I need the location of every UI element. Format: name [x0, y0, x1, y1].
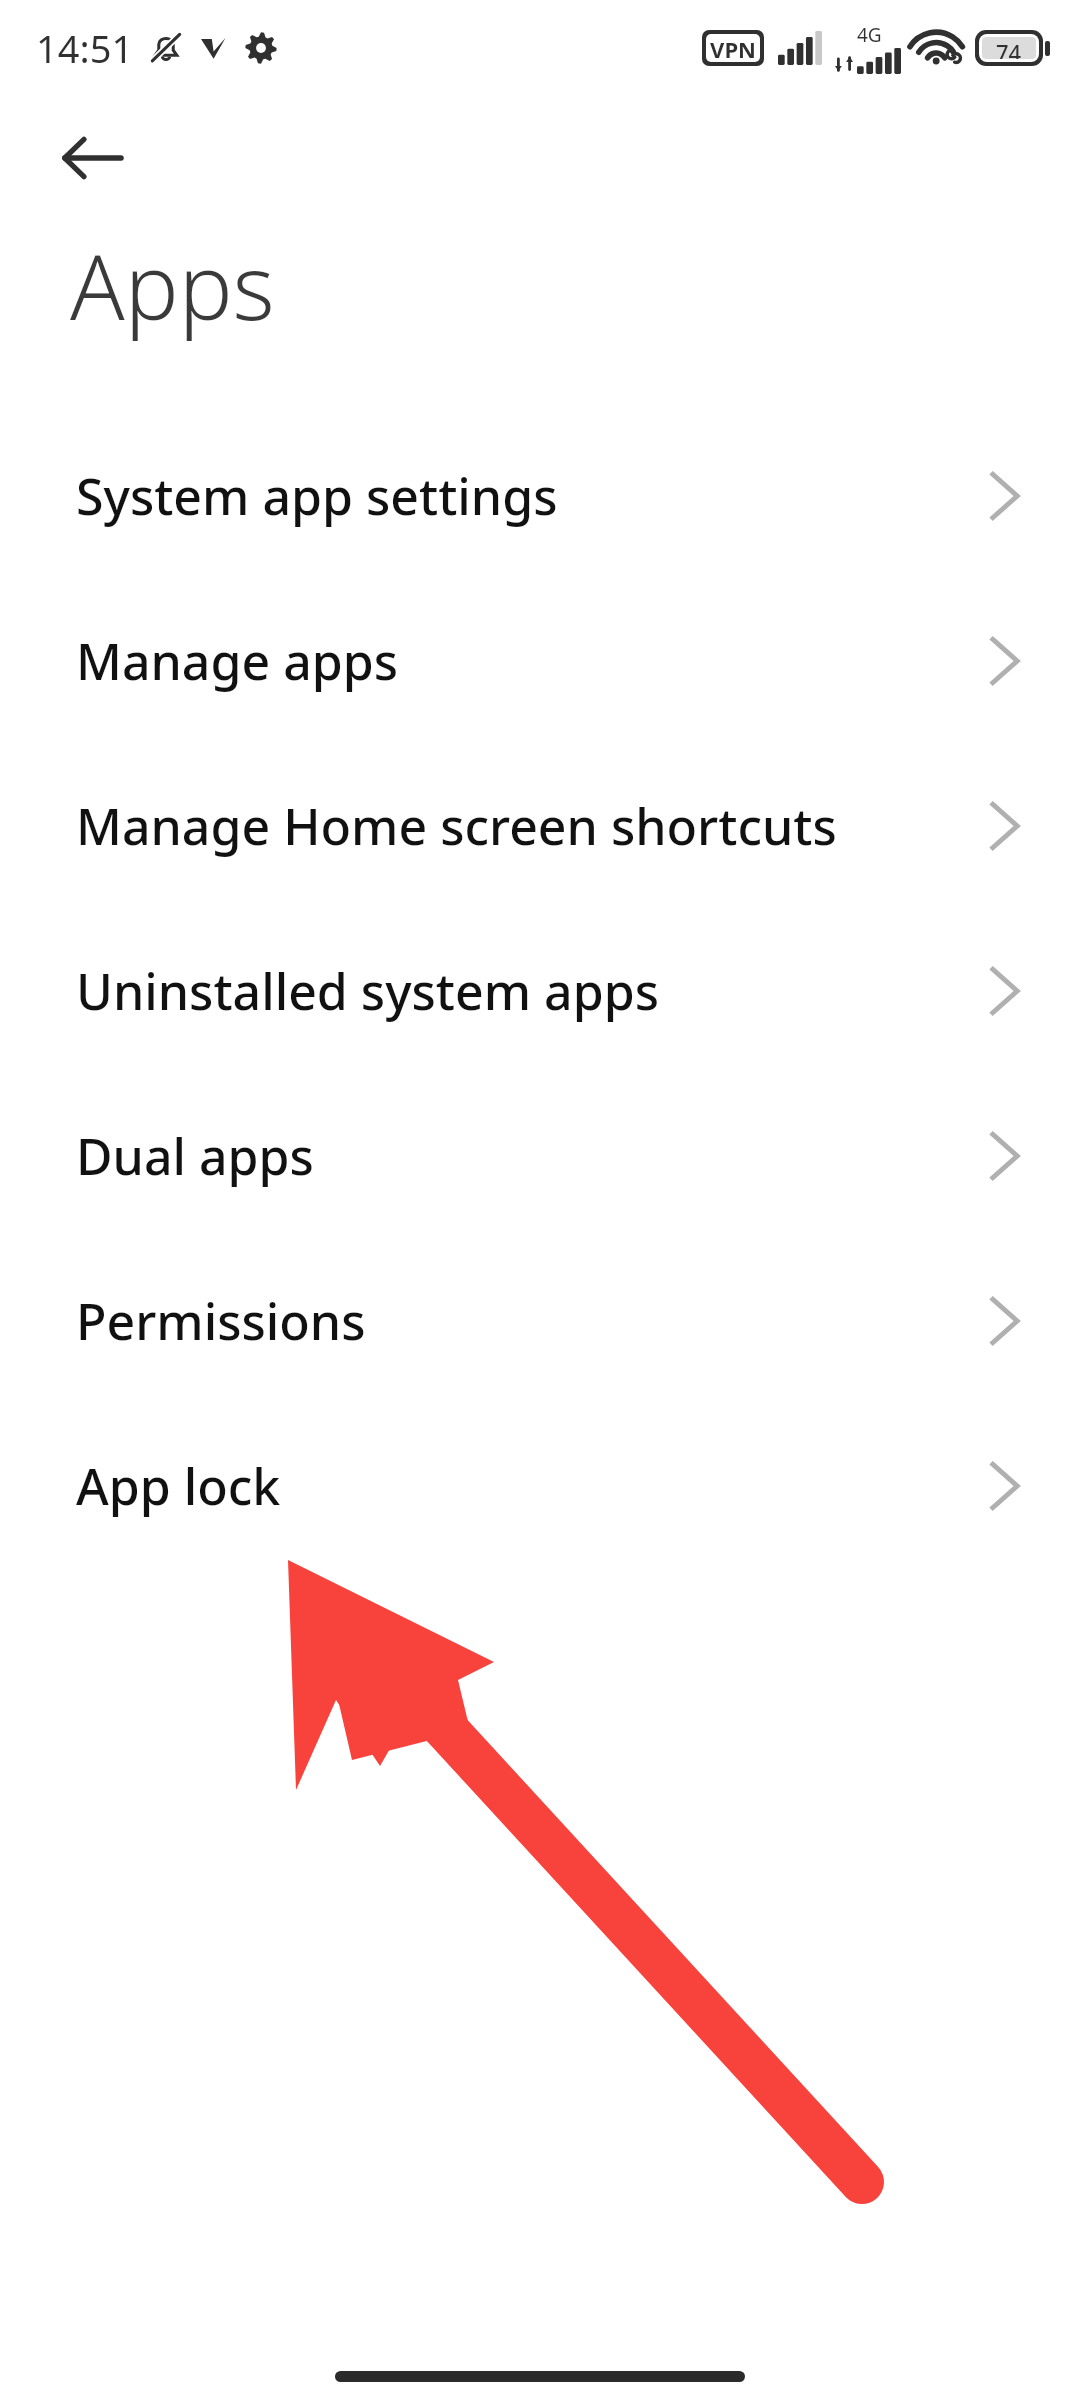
staticText: 14:51 — [36, 22, 134, 74]
button[interactable]: Dual apps — [0, 1073, 1080, 1238]
staticText: Permissions — [76, 1287, 986, 1355]
button[interactable]: Back — [42, 116, 142, 200]
button[interactable]: Permissions — [0, 1238, 1080, 1403]
button[interactable]: App lock — [0, 1403, 1080, 1568]
button[interactable]: Manage apps — [0, 578, 1080, 743]
button[interactable]: System app settings — [0, 413, 1080, 578]
staticText: Dual apps — [76, 1122, 986, 1190]
staticText: App lock — [76, 1452, 986, 1520]
button[interactable]: Manage Home screen shortcuts — [0, 743, 1080, 908]
staticText: 4G — [857, 22, 882, 48]
staticText: VPN — [710, 34, 756, 62]
staticText: Manage apps — [76, 627, 986, 695]
staticText: Uninstalled system apps — [76, 957, 986, 1025]
staticText: Manage Home screen shortcuts — [76, 792, 986, 860]
staticText: 74 — [996, 37, 1022, 59]
staticText: Apps — [70, 224, 275, 347]
staticText: System app settings — [76, 462, 986, 530]
button[interactable]: Uninstalled system apps — [0, 908, 1080, 1073]
